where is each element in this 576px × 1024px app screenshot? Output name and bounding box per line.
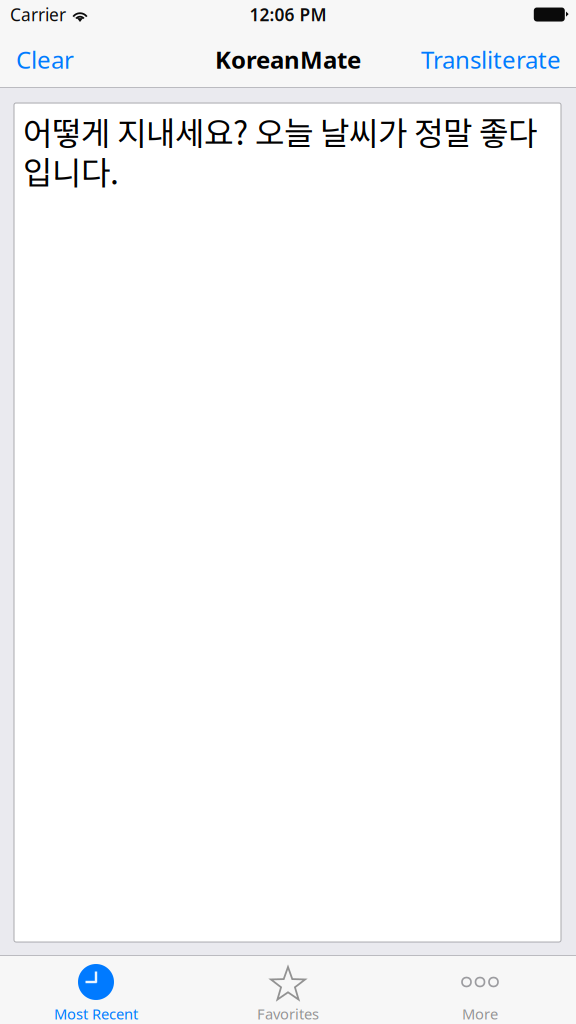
button[interactable]: Most Recent [0,955,192,1024]
staticText: Most Recent [54,1004,138,1023]
staticText: KoreanMate [215,44,361,75]
button[interactable]: More [384,955,576,1024]
staticText: 어떻게 지내세요? 오늘 날씨가 정말 좋다입니다. [23,108,537,194]
staticText: 12:06 PM [249,3,326,26]
button[interactable]: 어떻게 지내세요? 오늘 날씨가 정말 좋다입니다. [0,88,576,955]
staticText: More [462,1004,498,1023]
staticText: Favorites [257,1004,319,1023]
button[interactable]: Transliterate [413,34,566,85]
staticText: Carrier [10,3,66,26]
button[interactable]: Favorites [192,955,384,1024]
staticText: Transliterate [421,44,561,75]
button[interactable]: Clear [10,34,82,85]
staticText: Clear [16,44,74,75]
